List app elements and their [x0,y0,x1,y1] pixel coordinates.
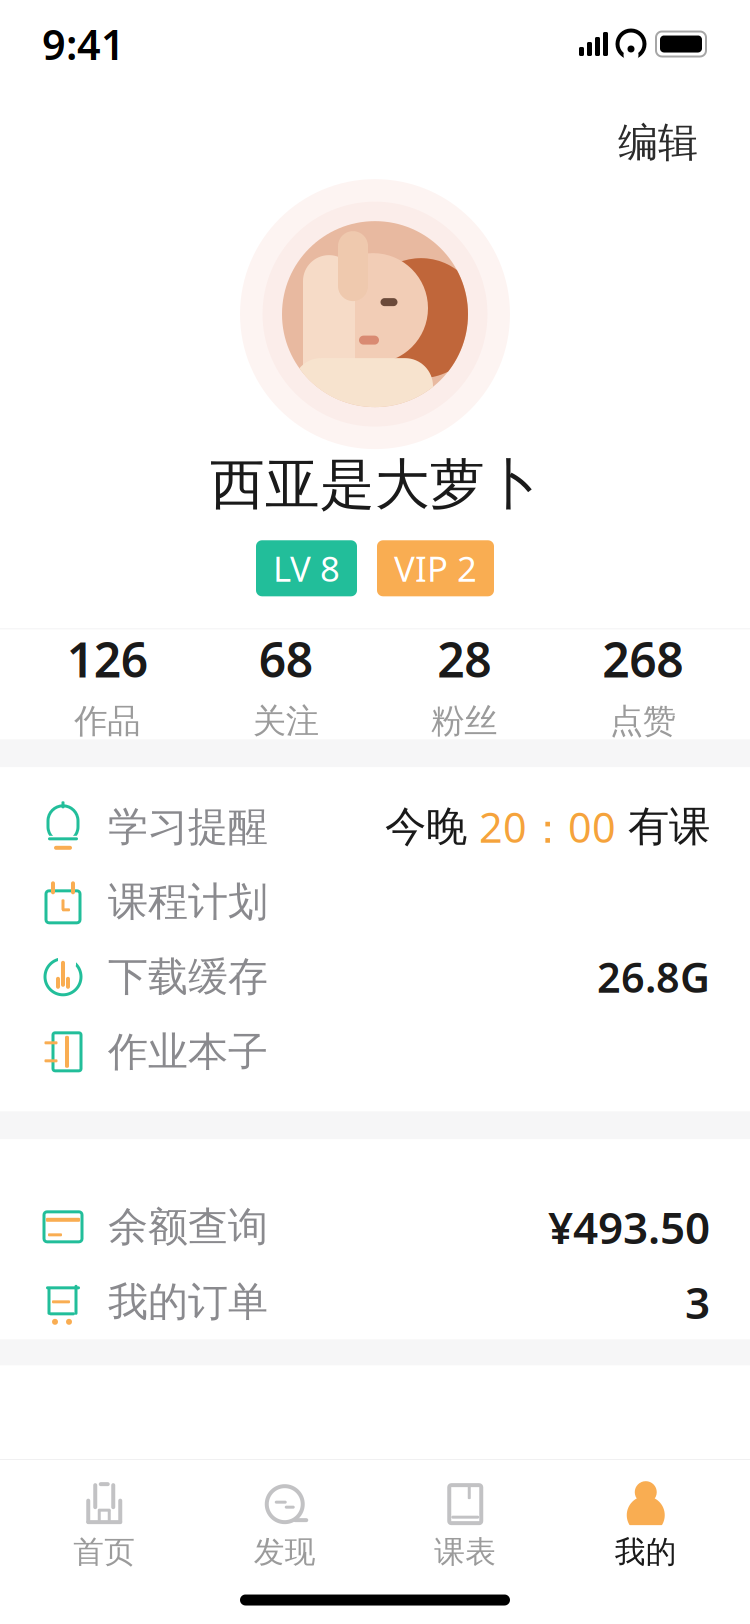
staticText: 126 [67,627,148,691]
button[interactable]: 编辑 [608,110,708,175]
button[interactable]: 下载缓存 [0,939,750,1014]
staticText: 9:41 [42,17,125,71]
staticText: 有课 [616,801,710,852]
button[interactable]: 我的订单 [0,1264,750,1339]
staticText: ¥493.50 [548,1198,710,1256]
staticText: 68 [259,627,313,691]
staticText: 首页 [73,1533,135,1571]
button[interactable]: 余额查询 [0,1189,750,1264]
staticText: 268 [602,627,683,691]
button[interactable]: 发现 [194,1475,375,1577]
button[interactable]: 首页 [14,1475,194,1577]
staticText: 西亚是大萝卜 [210,451,540,518]
staticText: 学习提醒 [108,802,268,851]
staticText: 我的订单 [108,1277,268,1326]
staticText: 粉丝 [431,701,497,742]
staticText: 编辑 [618,118,698,167]
staticText: 课表 [434,1533,496,1571]
staticText: 28 [437,627,491,691]
button[interactable]: 课表 [375,1475,555,1577]
staticText: 关注 [253,701,319,742]
button[interactable]: 学习提醒 [0,789,750,864]
staticText: LV 8 [273,545,340,591]
staticText: 作品 [74,701,140,742]
button[interactable]: 课程计划 [0,864,750,939]
staticText: 课程计划 [108,877,268,926]
staticText: 3 [685,1273,710,1331]
staticText: 我的 [615,1533,677,1571]
staticText: VIP 2 [394,545,477,591]
staticText: 下载缓存 [108,952,268,1001]
staticText: 点赞 [610,701,676,742]
button[interactable]: 作业本子 [0,1014,750,1089]
button[interactable]: 68 [196,621,375,748]
button[interactable]: 126 [18,621,196,748]
staticText: 余额查询 [108,1202,268,1251]
button[interactable]: 我的 [555,1475,736,1577]
staticText: 作业本子 [108,1027,268,1076]
button[interactable]: 28 [375,621,553,748]
staticText: 发现 [254,1533,316,1571]
staticText: 20：00 [479,799,616,854]
button[interactable]: 268 [553,621,732,748]
staticText: 26.8G [597,949,710,1004]
staticText: 今晚 [385,801,479,852]
